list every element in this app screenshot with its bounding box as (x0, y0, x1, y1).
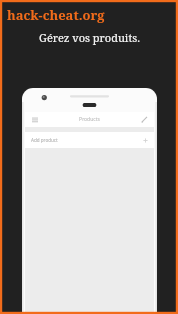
staticText: hack-cheat.org (7, 6, 105, 24)
staticText: Gérez vos produits. (39, 30, 140, 45)
button[interactable]: Edit (140, 115, 149, 124)
staticText: Add product (31, 137, 58, 143)
button[interactable]: Add product (25, 132, 154, 148)
staticText: Products (79, 116, 100, 123)
button[interactable]: Menu (30, 115, 39, 124)
